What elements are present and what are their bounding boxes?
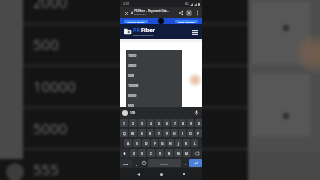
staticText: Account Details bbox=[127, 20, 145, 23]
staticText: ?123 bbox=[123, 162, 129, 165]
button[interactable]: 500 bbox=[126, 70, 182, 80]
staticText: M bbox=[185, 151, 189, 156]
button[interactable]: W bbox=[129, 129, 137, 137]
staticText: F bbox=[154, 141, 156, 146]
button[interactable]: 2 bbox=[129, 119, 137, 127]
button[interactable]: 10000 bbox=[126, 80, 182, 90]
staticText: 2:31 bbox=[123, 2, 130, 6]
button[interactable]: Home bbox=[156, 169, 166, 179]
button[interactable]: M bbox=[183, 149, 191, 157]
button[interactable]: 6 bbox=[163, 119, 170, 127]
staticText: H bbox=[169, 141, 172, 146]
staticText: 0 bbox=[198, 121, 200, 126]
button[interactable]: T bbox=[155, 129, 162, 137]
button[interactable]: J bbox=[175, 139, 182, 147]
button[interactable]: 9 bbox=[187, 119, 194, 127]
staticText: J bbox=[178, 141, 179, 146]
staticText: , bbox=[136, 161, 137, 166]
button[interactable]: F bbox=[151, 139, 158, 147]
staticText: 500 bbox=[128, 73, 135, 78]
staticText: Z bbox=[133, 151, 135, 156]
staticText: 5000 bbox=[33, 118, 68, 138]
button[interactable]: 4 bbox=[147, 119, 154, 127]
button[interactable]: L bbox=[191, 139, 198, 147]
button[interactable]: Back bbox=[133, 169, 143, 179]
button[interactable]: Account Details bbox=[124, 20, 148, 23]
staticText: T bbox=[158, 131, 160, 136]
staticText: P bbox=[197, 131, 200, 136]
staticText: 100 bbox=[130, 111, 136, 115]
button[interactable]: Emoji bbox=[140, 158, 147, 168]
button[interactable]: U bbox=[171, 129, 178, 137]
button[interactable]: 8 bbox=[179, 119, 186, 127]
staticText: 9 bbox=[190, 121, 192, 126]
staticText: 500 bbox=[33, 34, 59, 54]
button[interactable]: H bbox=[167, 139, 174, 147]
staticText: pkfiber.net bbox=[134, 13, 146, 16]
button[interactable]: More options bbox=[193, 9, 201, 17]
button[interactable]: Share bbox=[177, 9, 185, 17]
button[interactable]: 5 bbox=[155, 119, 162, 127]
button[interactable]: 1000 bbox=[126, 50, 182, 60]
button[interactable]: N bbox=[174, 149, 182, 157]
button[interactable]: Make Payment bbox=[175, 20, 198, 23]
staticText: E bbox=[141, 131, 143, 136]
button[interactable]: E bbox=[138, 129, 146, 137]
button[interactable]: G bbox=[159, 139, 166, 147]
button[interactable]: C bbox=[147, 149, 155, 157]
staticText: 2000 bbox=[33, 0, 68, 12]
staticText: 1000 bbox=[128, 53, 137, 58]
button[interactable]: Close bbox=[122, 9, 130, 17]
staticText: 555 bbox=[128, 103, 135, 108]
button[interactable]: Backspace bbox=[192, 149, 202, 157]
button[interactable]: K bbox=[183, 139, 190, 147]
button[interactable]: R bbox=[147, 129, 154, 137]
staticText: U bbox=[173, 131, 176, 136]
button[interactable]: Comma bbox=[133, 158, 139, 168]
button[interactable]: Z bbox=[130, 149, 137, 157]
button[interactable]: 7 bbox=[171, 119, 178, 127]
staticText: G bbox=[161, 141, 164, 146]
button[interactable]: Enter bbox=[189, 159, 202, 167]
staticText: 1 bbox=[123, 121, 125, 126]
staticText: 7 bbox=[174, 121, 176, 126]
staticText: Make Payment bbox=[178, 20, 195, 23]
staticText: O bbox=[189, 131, 192, 136]
button[interactable]: I bbox=[179, 129, 186, 137]
staticText: S bbox=[136, 141, 138, 146]
button[interactable]: ?123 bbox=[120, 159, 132, 167]
button[interactable]: Period bbox=[182, 158, 188, 168]
staticText: A bbox=[127, 141, 130, 146]
button[interactable]: 3 bbox=[138, 119, 146, 127]
staticText: 2 bbox=[132, 121, 134, 126]
button[interactable]: Q bbox=[120, 129, 128, 137]
button[interactable]: Shift bbox=[120, 149, 129, 157]
button[interactable]: B bbox=[165, 149, 173, 157]
button[interactable]: 5000 bbox=[126, 90, 182, 100]
button[interactable]: V bbox=[156, 149, 164, 157]
staticText: 6 bbox=[166, 121, 168, 126]
button[interactable]: X bbox=[138, 149, 146, 157]
button[interactable]: English bbox=[148, 159, 181, 167]
button[interactable]: Y bbox=[163, 129, 170, 137]
staticText: L bbox=[194, 141, 196, 146]
button[interactable]: Recents bbox=[179, 169, 189, 179]
staticText: B bbox=[168, 151, 171, 156]
staticText: Fastest Internet Ever bbox=[133, 34, 154, 37]
button[interactable]: 555 bbox=[126, 100, 182, 110]
staticText: X bbox=[141, 151, 143, 156]
button[interactable]: 0 bbox=[195, 119, 202, 127]
button[interactable]: P bbox=[195, 129, 202, 137]
staticText: 5 bbox=[158, 121, 160, 126]
button[interactable]: 2000 bbox=[126, 60, 182, 70]
button[interactable]: Menu bbox=[191, 28, 199, 36]
button[interactable]: O bbox=[187, 129, 194, 137]
button[interactable]: A bbox=[124, 139, 132, 147]
button[interactable]: D bbox=[142, 139, 150, 147]
button[interactable]: S bbox=[133, 139, 141, 147]
staticText: . bbox=[185, 161, 186, 166]
staticText: I bbox=[182, 131, 184, 136]
button[interactable]: 1 bbox=[120, 119, 128, 127]
button[interactable]: Bookmark bbox=[185, 9, 193, 17]
staticText: D bbox=[145, 141, 148, 146]
